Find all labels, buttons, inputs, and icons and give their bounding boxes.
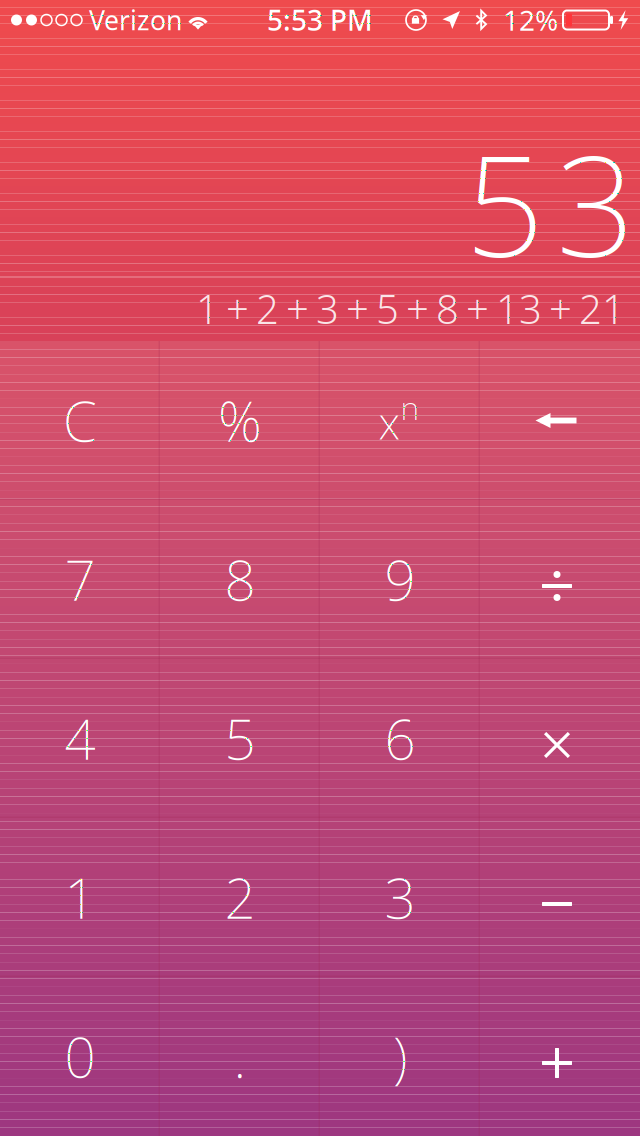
button[interactable]: 7 [0,500,160,659]
button[interactable]: 1 [0,818,160,977]
button[interactable]: Percent [160,341,320,500]
staticText: 9 [384,543,415,616]
staticText: 0 [64,1020,95,1093]
button[interactable]: Decimal point [160,977,320,1136]
button[interactable]: Backspace [480,341,640,500]
staticText: 2 [224,861,255,934]
staticText: 8 [224,543,255,616]
staticText: . [233,1020,246,1093]
button[interactable]: 8 [160,500,320,659]
button[interactable]: 2 [160,818,320,977]
button[interactable]: Close parenthesis [320,977,480,1136]
staticText: x [378,393,400,452]
staticText: C [63,384,97,457]
staticText: % [218,384,262,457]
staticText: 5 [224,702,255,775]
staticText: 5:53 PM [267,1,373,39]
button[interactable]: 9 [320,500,480,659]
staticText: n [400,386,419,429]
button[interactable]: Divide [480,500,640,659]
button[interactable]: 4 [0,659,160,818]
button[interactable]: 0 [0,977,160,1136]
staticText: 4 [64,702,95,775]
button[interactable]: 5 [160,659,320,818]
staticText: 7 [64,543,95,616]
staticText: 1 [64,861,95,934]
staticText: 53 [465,111,635,295]
button[interactable]: Subtract [480,818,640,977]
button[interactable]: Multiply [480,659,640,818]
button[interactable]: 3 [320,818,480,977]
button[interactable]: 6 [320,659,480,818]
staticText: Verizon [89,2,182,38]
button[interactable]: Power [320,341,480,500]
staticText: 6 [384,702,415,775]
button[interactable]: Add [480,977,640,1136]
staticText: 1 + 2 + 3 + 5 + 8 + 13 + 21 [196,282,625,335]
staticText: 3 [384,861,415,934]
staticText: ) [393,1020,407,1093]
button[interactable]: Clear [0,341,160,500]
staticText: 12% [503,1,558,39]
